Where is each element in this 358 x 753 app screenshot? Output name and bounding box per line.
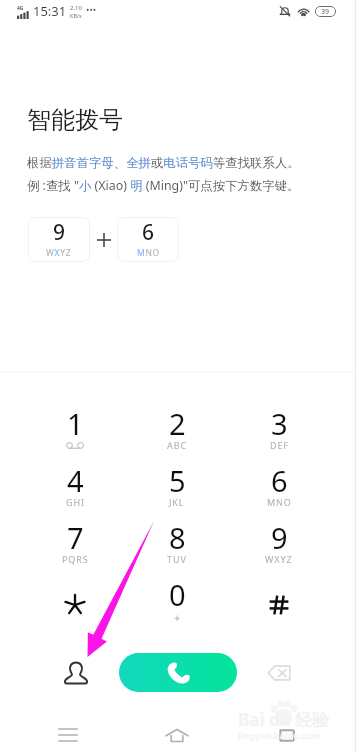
- staticText: 39: [321, 7, 330, 17]
- button[interactable]: 9: [228, 519, 330, 576]
- button[interactable]: Delete: [255, 650, 303, 696]
- staticText: 5: [169, 461, 186, 500]
- staticText: MNO: [267, 496, 292, 508]
- staticText: JKL: [169, 496, 185, 508]
- button[interactable]: 4: [24, 462, 126, 519]
- button[interactable]: 8: [126, 519, 228, 576]
- staticText: 2.10: [70, 4, 82, 12]
- staticText: •••: [86, 3, 97, 15]
- staticText: 4G: [17, 5, 24, 12]
- staticText: KB/s: [70, 12, 82, 19]
- button[interactable]: 0: [126, 576, 228, 633]
- button[interactable]: Pound: [228, 576, 330, 633]
- staticText: DEF: [270, 439, 289, 451]
- staticText: 7: [67, 518, 84, 557]
- staticText: ABC: [167, 439, 187, 451]
- staticText: 3: [271, 404, 288, 443]
- staticText: GHI: [66, 496, 85, 508]
- button[interactable]: 3: [228, 405, 330, 462]
- staticText: 智能拨号: [27, 105, 123, 135]
- staticText: 0: [169, 575, 186, 614]
- button[interactable]: 5: [126, 462, 228, 519]
- staticText: 根据拼音首字母、全拼或电话号码等查找联系人。: [27, 155, 300, 171]
- staticText: 2: [169, 404, 186, 443]
- staticText: PQRS: [62, 553, 89, 565]
- button[interactable]: Contacts: [52, 650, 100, 696]
- staticText: 15:31: [33, 2, 67, 20]
- button[interactable]: 2: [126, 405, 228, 462]
- button[interactable]: Call: [119, 653, 237, 692]
- staticText: MNO: [137, 247, 160, 259]
- button[interactable]: Star: [24, 576, 126, 633]
- button[interactable]: 7: [24, 519, 126, 576]
- staticText: WXYZ: [46, 247, 72, 259]
- staticText: TUV: [167, 553, 187, 565]
- staticText: 例 :查找 "小 (Xiao) 明 (Ming)"可点按下方数字键。: [27, 177, 300, 194]
- staticText: 6: [142, 218, 155, 247]
- staticText: 4: [67, 461, 84, 500]
- staticText: 9: [53, 218, 66, 247]
- staticText: 9: [271, 518, 288, 557]
- button[interactable]: Home: [157, 722, 197, 748]
- staticText: 8: [169, 518, 186, 557]
- button[interactable]: Back: [266, 722, 306, 748]
- button[interactable]: 9: [28, 217, 90, 262]
- button[interactable]: Recents: [48, 722, 88, 748]
- staticText: 6: [271, 461, 288, 500]
- staticText: 1: [67, 404, 84, 443]
- staticText: WXYZ: [265, 553, 293, 565]
- staticText: +: [174, 610, 181, 625]
- button[interactable]: 6: [117, 217, 179, 262]
- staticText: Bai du 经验: [238, 708, 330, 731]
- button[interactable]: 6: [228, 462, 330, 519]
- staticText: jingyan.baidu.com: [238, 729, 321, 741]
- button[interactable]: 1: [24, 405, 126, 462]
